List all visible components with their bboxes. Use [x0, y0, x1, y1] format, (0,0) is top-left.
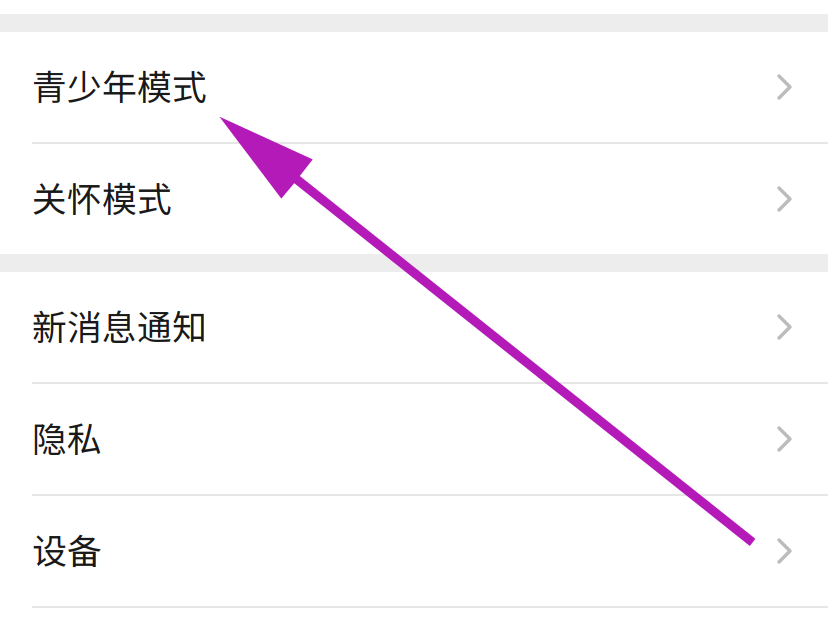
staticText: 新消息通知 [32, 300, 207, 350]
button[interactable]: 设备 [0, 496, 828, 606]
staticText: 隐私 [32, 412, 102, 462]
button[interactable]: 关怀模式 [0, 144, 828, 254]
staticText: 关怀模式 [32, 172, 172, 222]
button[interactable]: 青少年模式 [0, 32, 828, 142]
button[interactable]: 隐私 [0, 384, 828, 494]
button[interactable]: 新消息通知 [0, 272, 828, 382]
staticText: 设备 [32, 524, 102, 574]
staticText: 青少年模式 [32, 60, 207, 110]
